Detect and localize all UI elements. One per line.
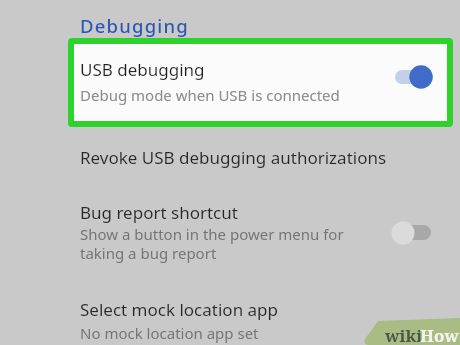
staticText: Debugging (80, 13, 190, 38)
staticText: Debug mode when USB is connected (80, 85, 340, 105)
button[interactable]: Revoke USB debugging authorizations (68, 135, 453, 175)
button[interactable] (393, 64, 435, 90)
staticText: How (420, 324, 459, 345)
staticText: wiki (385, 324, 423, 345)
button[interactable]: Select mock location app (68, 292, 453, 345)
staticText: taking a bug report (80, 243, 217, 263)
staticText: Revoke USB debugging authorizations (80, 146, 387, 169)
button[interactable]: Bug report shortcut (68, 192, 453, 267)
staticText: USB debugging (80, 58, 205, 81)
button[interactable] (74, 44, 447, 121)
staticText: No mock location app set (80, 323, 259, 343)
staticText: Show a button in the power menu for (80, 224, 344, 244)
staticText: Bug report shortcut (80, 201, 238, 224)
button[interactable] (390, 220, 434, 246)
staticText: Select mock location app (80, 298, 278, 321)
